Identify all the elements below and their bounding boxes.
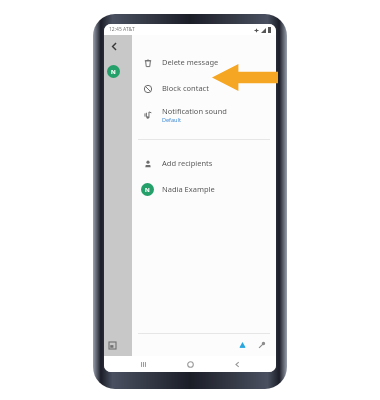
staticText: Add recipients xyxy=(162,158,213,168)
staticText: Nadia Example xyxy=(162,184,215,194)
staticText: Default xyxy=(162,116,181,123)
button[interactable]: N xyxy=(132,176,276,202)
button[interactable]: Add recipients xyxy=(132,150,276,176)
button[interactable]: Block contact xyxy=(132,75,276,101)
button[interactable]: Back xyxy=(229,356,245,372)
staticText: Notification sound xyxy=(162,106,227,116)
button[interactable]: Notification sound xyxy=(132,101,276,127)
button[interactable]: Home xyxy=(182,356,198,372)
other: Pointer arrow xyxy=(212,64,278,91)
staticText: N xyxy=(111,68,116,76)
staticText: Block contact xyxy=(162,83,209,93)
button[interactable]: Notification xyxy=(236,339,249,352)
button[interactable]: Attach image xyxy=(107,340,118,351)
staticText: Delete message xyxy=(162,57,219,67)
button[interactable]: Delete message xyxy=(132,49,276,75)
button[interactable]: Recents xyxy=(135,356,151,372)
button[interactable]: Pin xyxy=(255,339,268,352)
staticText: 12:45 AT&T xyxy=(109,26,135,33)
button[interactable]: Back xyxy=(107,39,121,53)
staticText: N xyxy=(145,186,150,194)
